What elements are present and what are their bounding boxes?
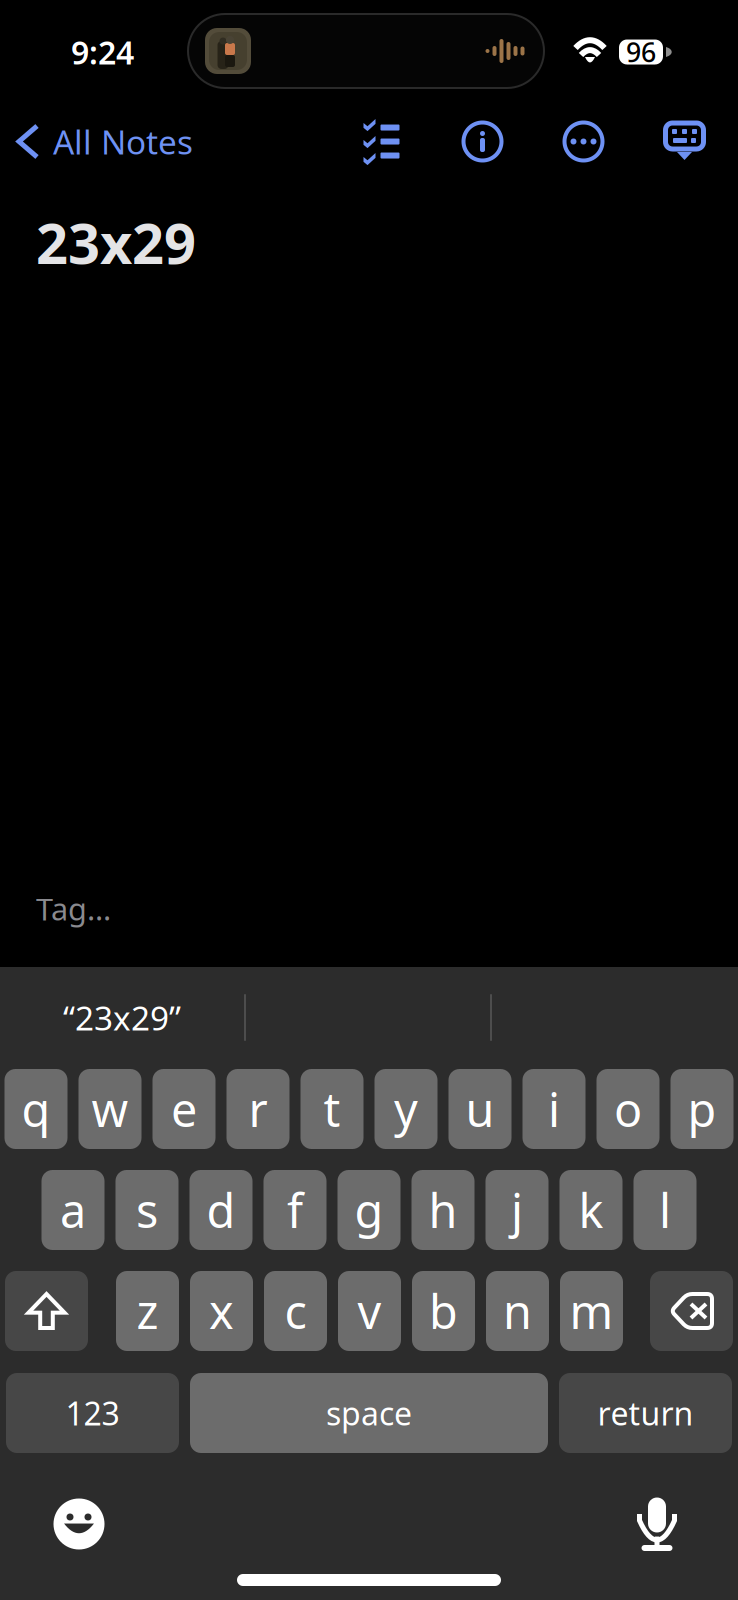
button[interactable]: n [486, 1271, 549, 1351]
staticText: m [569, 1280, 613, 1342]
staticText: i [548, 1078, 560, 1140]
button[interactable]: m [560, 1271, 623, 1351]
button[interactable]: All Notes [0, 104, 207, 179]
button[interactable]: i [522, 1069, 585, 1149]
staticText: o [614, 1078, 642, 1140]
staticText: k [578, 1179, 603, 1241]
staticText: 23x29 [36, 205, 196, 279]
button[interactable]: h [411, 1170, 474, 1250]
staticText: z [136, 1280, 158, 1342]
staticText: a [60, 1179, 86, 1241]
button[interactable]: p [670, 1069, 733, 1149]
button[interactable]: j [485, 1170, 548, 1250]
staticText: v [357, 1280, 381, 1342]
button[interactable]: Tag... [0, 888, 111, 967]
button[interactable]: space [190, 1373, 548, 1453]
button[interactable]: x [190, 1271, 253, 1351]
button[interactable]: k [559, 1170, 622, 1250]
button[interactable]: 123 [6, 1373, 179, 1453]
staticText: u [465, 1078, 494, 1140]
staticText: g [354, 1179, 383, 1241]
staticText: p [687, 1078, 716, 1140]
button[interactable]: Info [432, 104, 533, 179]
staticText: n [503, 1280, 532, 1342]
button[interactable]: d [189, 1170, 252, 1250]
staticText: q [21, 1078, 50, 1140]
button[interactable]: z [116, 1271, 179, 1351]
button[interactable]: a [41, 1170, 104, 1250]
staticText: 96 [626, 34, 656, 70]
button[interactable]: f [263, 1170, 326, 1250]
button[interactable]: “23x29” [0, 967, 244, 1068]
staticText: h [428, 1179, 457, 1241]
button[interactable]: u [448, 1069, 511, 1149]
button[interactable]: c [264, 1271, 327, 1351]
staticText: s [136, 1179, 158, 1241]
button[interactable]: b [412, 1271, 475, 1351]
staticText: r [248, 1078, 267, 1140]
button[interactable]: Dictation [619, 1486, 695, 1562]
button[interactable]: v [338, 1271, 401, 1351]
staticText: All Notes [53, 119, 193, 164]
staticText: l [659, 1179, 671, 1241]
staticText: x [209, 1280, 234, 1342]
staticText: Tag... [36, 888, 111, 929]
staticText: b [429, 1280, 458, 1342]
button[interactable]: e [152, 1069, 215, 1149]
staticText: w [91, 1078, 128, 1140]
button[interactable]: Checklist [331, 104, 432, 179]
button[interactable]: Shift [5, 1271, 88, 1351]
button[interactable]: y [374, 1069, 437, 1149]
staticText: t [323, 1078, 340, 1140]
button[interactable]: r [226, 1069, 289, 1149]
button[interactable]: o [596, 1069, 659, 1149]
button[interactable]: More [533, 104, 634, 179]
staticText: e [171, 1078, 197, 1140]
button[interactable]: Delete [650, 1271, 733, 1351]
button[interactable]: g [337, 1170, 400, 1250]
staticText: 9:24 [71, 31, 134, 73]
button[interactable]: return [559, 1373, 732, 1453]
staticText: 123 [65, 1392, 119, 1434]
button[interactable]: q [4, 1069, 67, 1149]
staticText: “23x29” [63, 995, 181, 1040]
button[interactable]: w [78, 1069, 141, 1149]
staticText: f [287, 1179, 303, 1241]
staticText: return [597, 1392, 693, 1434]
staticText: c [284, 1280, 306, 1342]
staticText: j [511, 1179, 523, 1241]
staticText: space [326, 1392, 412, 1434]
button[interactable]: l [633, 1170, 696, 1250]
button[interactable]: Hide Keyboard [634, 104, 735, 179]
button[interactable]: t [300, 1069, 363, 1149]
button[interactable]: s [115, 1170, 178, 1250]
staticText: y [394, 1078, 418, 1140]
staticText: d [206, 1179, 235, 1241]
button[interactable]: Emoji [41, 1486, 117, 1562]
